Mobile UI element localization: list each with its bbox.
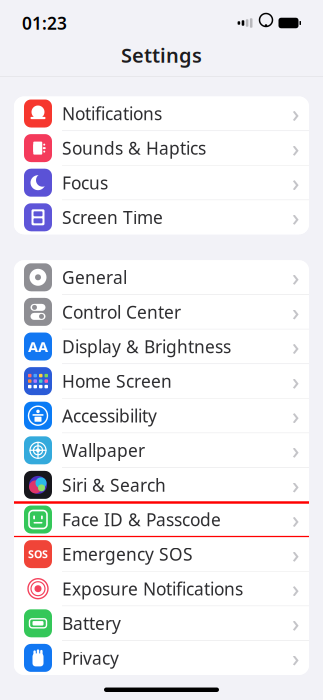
staticText: ›: [292, 643, 299, 673]
staticText: ›: [292, 608, 299, 638]
staticText: Control Center: [62, 300, 181, 323]
staticText: Exposure Notifications: [62, 577, 243, 600]
staticText: ›: [292, 202, 299, 232]
staticText: ›: [292, 539, 299, 569]
staticText: Screen Time: [62, 206, 163, 229]
button[interactable]: [14, 200, 309, 234]
staticText: Wallpaper: [62, 439, 145, 462]
staticText: ›: [292, 504, 299, 534]
staticText: ›: [292, 262, 299, 292]
staticText: Accessibility: [62, 404, 157, 427]
button[interactable]: Focus: [14, 166, 309, 200]
button[interactable]: Control Center: [14, 295, 309, 329]
staticText: ›: [292, 331, 299, 361]
staticText: Sounds & Haptics: [62, 137, 206, 160]
staticText: Settings: [121, 42, 202, 68]
staticText: ›: [292, 98, 299, 128]
staticText: Emergency SOS: [62, 543, 193, 566]
button[interactable]: Exposure Notifications: [14, 572, 309, 606]
button[interactable]: SOS: [14, 537, 309, 572]
staticText: Notifications: [62, 102, 162, 125]
staticText: ›: [292, 574, 299, 604]
staticText: ›: [292, 470, 299, 500]
button[interactable]: Wallpaper: [14, 433, 309, 468]
staticText: SOS: [28, 547, 48, 561]
staticText: Battery: [62, 612, 121, 635]
staticText: Face ID & Passcode: [62, 508, 221, 531]
staticText: Privacy: [62, 646, 119, 669]
staticText: Home Screen: [62, 370, 172, 393]
button[interactable]: Privacy: [14, 641, 309, 675]
staticText: Display & Brightness: [62, 335, 231, 358]
button[interactable]: Sounds & Haptics: [14, 131, 309, 166]
button[interactable]: General: [14, 260, 309, 295]
staticText: ›: [292, 435, 299, 465]
staticText: ›: [292, 297, 299, 327]
staticText: ›: [292, 401, 299, 431]
staticText: Siri & Search: [62, 473, 166, 496]
button[interactable]: Siri & Search: [14, 468, 309, 502]
button[interactable]: Home Screen: [14, 364, 309, 399]
staticText: 01:23: [22, 11, 67, 34]
button[interactable]: Notifications: [14, 96, 309, 131]
staticText: General: [62, 266, 127, 289]
button[interactable]: Battery: [14, 606, 309, 641]
staticText: ›: [292, 366, 299, 396]
staticText: Focus: [62, 171, 108, 194]
button[interactable]: Face ID & Passcode: [14, 502, 309, 537]
staticText: ›: [292, 133, 299, 163]
staticText: AA: [28, 337, 48, 356]
staticText: ›: [292, 168, 299, 198]
button[interactable]: AA: [14, 329, 309, 364]
button[interactable]: Accessibility: [14, 399, 309, 433]
